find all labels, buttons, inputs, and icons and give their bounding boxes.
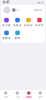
staticText: 待收货 bbox=[24, 23, 33, 27]
button[interactable]: Home bbox=[0, 90, 11, 100]
staticText: 退换货 bbox=[2, 36, 11, 40]
staticText: 张小明 bbox=[12, 7, 23, 13]
staticText: 购物车 bbox=[26, 95, 32, 99]
staticText: 9:41 bbox=[3, 1, 9, 4]
button[interactable]: 待付款 bbox=[1, 18, 12, 27]
button[interactable]: 客服 bbox=[12, 31, 23, 39]
button[interactable]: 退换货 bbox=[1, 31, 12, 39]
button[interactable]: 待收货 bbox=[23, 18, 34, 27]
staticText: 我的 bbox=[38, 95, 42, 99]
staticText: 首页 bbox=[4, 95, 8, 99]
button[interactable]: Categories bbox=[11, 90, 23, 100]
staticText: 待评价 bbox=[35, 23, 44, 27]
button[interactable]: 张小明 bbox=[1, 5, 45, 15]
button[interactable]: 待评价 bbox=[34, 18, 45, 27]
button[interactable]: Cart bbox=[23, 90, 34, 100]
staticText: 待付款 bbox=[2, 23, 11, 27]
staticText: ••• ▭ bbox=[37, 1, 43, 4]
button[interactable]: Profile bbox=[34, 90, 46, 100]
staticText: 查看详情› bbox=[34, 8, 43, 12]
staticText: 客服 bbox=[14, 36, 20, 40]
button[interactable]: 待发货 bbox=[12, 18, 23, 27]
staticText: 分类 bbox=[15, 95, 19, 99]
staticText: 待发货 bbox=[13, 23, 22, 27]
